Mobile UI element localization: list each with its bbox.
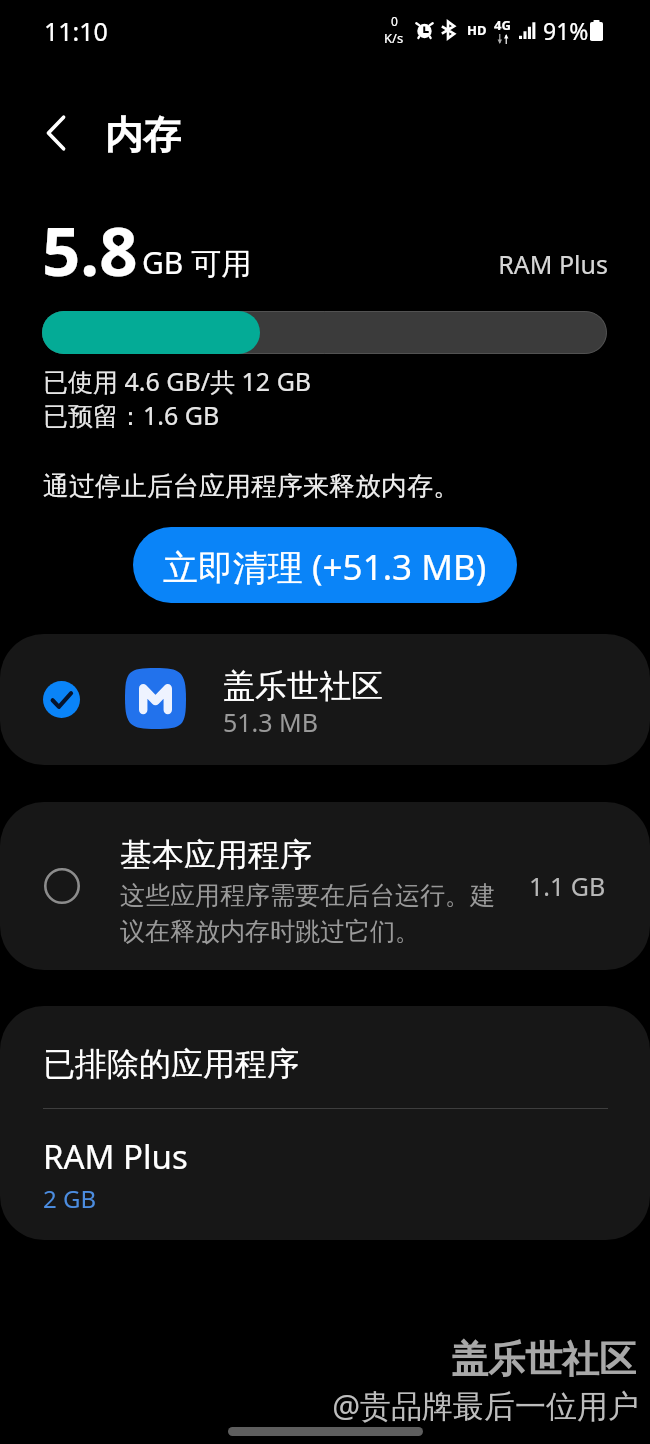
button[interactable]: 立即清理 (+51.3 MB) bbox=[133, 527, 517, 603]
staticText: 盖乐世社区 bbox=[223, 666, 383, 706]
staticText: 基本应用程序 bbox=[120, 835, 312, 875]
staticText: 已使用 4.6 GB/共 12 GB bbox=[43, 364, 312, 398]
staticText: @贵品牌最后一位用户 bbox=[0, 1384, 639, 1426]
staticText: 1.1 GB bbox=[529, 869, 606, 903]
staticText: K/s bbox=[384, 29, 404, 47]
button[interactable]: Back bbox=[28, 105, 84, 161]
staticText: RAM Plus bbox=[0, 247, 608, 281]
staticText: 内存 bbox=[105, 111, 181, 159]
staticText: 2 GB bbox=[43, 1182, 97, 1215]
staticText: 已预留：1.6 GB bbox=[43, 398, 220, 432]
staticText: 91% bbox=[543, 15, 589, 46]
staticText: 通过停止后台应用程序来释放内存。 bbox=[43, 470, 459, 503]
staticText: 11:10 bbox=[44, 14, 108, 48]
staticText: 0 bbox=[391, 13, 398, 29]
button[interactable]: 基本应用程序 bbox=[0, 802, 650, 970]
button[interactable]: RAM Plus bbox=[0, 1134, 650, 1224]
staticText: 这些应用程序需要在后台运行。建 议在释放内存时跳过它们。 bbox=[120, 880, 495, 947]
staticText: GB 可用 bbox=[142, 242, 252, 283]
staticText: 4G bbox=[494, 16, 511, 34]
staticText: 51.3 MB bbox=[223, 705, 319, 739]
staticText: RAM Plus bbox=[43, 1134, 188, 1179]
staticText: 立即清理 (+51.3 MB) bbox=[163, 543, 487, 591]
staticText: 已排除的应用程序 bbox=[43, 1044, 299, 1084]
staticText: 5.8 bbox=[42, 204, 138, 295]
staticText: 盖乐世社区 bbox=[0, 1336, 636, 1383]
button[interactable]: 盖乐世社区 bbox=[0, 634, 650, 765]
staticText: HD bbox=[467, 21, 487, 39]
